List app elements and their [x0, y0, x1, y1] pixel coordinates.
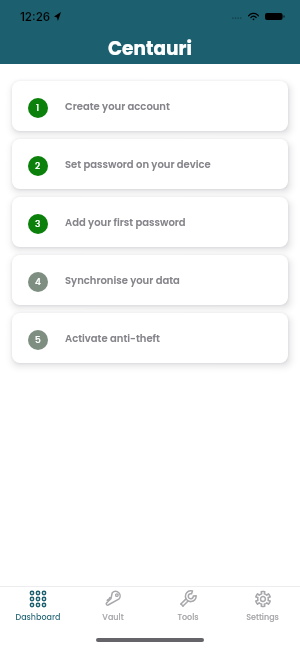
staticText: Add your first password [65, 215, 186, 229]
button[interactable]: Dashboard [0, 590, 75, 623]
staticText: 5 [35, 334, 41, 347]
button[interactable]: Vault [75, 590, 150, 623]
button[interactable]: 3 [12, 197, 288, 247]
staticText: Set password on your device [65, 157, 211, 171]
staticText: Vault [102, 612, 124, 623]
button[interactable]: 5 [12, 313, 288, 363]
button[interactable]: Tools [150, 590, 225, 623]
staticText: Tools [177, 612, 199, 623]
button[interactable]: 4 [12, 255, 288, 305]
staticText: 1 [36, 102, 40, 115]
button[interactable]: 2 [12, 139, 288, 189]
staticText: 12:26 [20, 10, 51, 24]
staticText: 4 [35, 276, 41, 289]
staticText: Activate anti-theft [65, 331, 160, 345]
staticText: Dashboard [15, 612, 61, 623]
staticText: Centauri [108, 36, 192, 62]
staticText: Create your account [65, 99, 170, 113]
staticText: Settings [246, 612, 279, 623]
staticText: 3 [35, 218, 41, 231]
staticText: 2 [35, 160, 41, 173]
staticText: Synchronise your data [65, 273, 180, 287]
button[interactable]: 1 [12, 81, 288, 131]
button[interactable]: Settings [225, 590, 300, 623]
